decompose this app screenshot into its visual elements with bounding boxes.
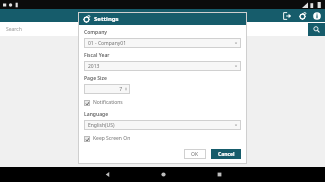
staticText: Page Size xyxy=(84,75,107,82)
staticText: 2013 xyxy=(88,63,234,70)
staticText: English(US) xyxy=(88,122,234,129)
button[interactable]: OK xyxy=(184,149,206,159)
staticText: Notifications xyxy=(93,99,123,106)
button[interactable]: Notifications xyxy=(84,98,241,107)
staticText: Search xyxy=(6,26,22,33)
button[interactable]: Cancel xyxy=(211,149,241,159)
button[interactable]: Recents xyxy=(206,167,232,182)
staticText: Keep Screen On xyxy=(93,135,131,142)
button[interactable]: 7 xyxy=(84,84,130,94)
staticText: Fiscal Year xyxy=(84,52,110,59)
staticText: Company xyxy=(84,29,108,36)
button[interactable]: Settings xyxy=(297,11,307,21)
button[interactable]: 2013 xyxy=(84,61,241,71)
staticText: Cancel xyxy=(218,151,235,158)
button[interactable]: Back xyxy=(94,167,120,182)
button[interactable]: Info xyxy=(312,11,322,21)
button[interactable]: 01 - Company01 xyxy=(84,38,241,48)
button[interactable]: Keep Screen On xyxy=(84,134,241,143)
button[interactable]: Settings xyxy=(78,12,247,25)
button[interactable]: English(US) xyxy=(84,120,241,130)
staticText: OK xyxy=(191,151,199,158)
button[interactable]: Home xyxy=(150,167,176,182)
staticText: 7 xyxy=(84,86,122,93)
staticText: Language xyxy=(84,111,109,118)
staticText: Settings xyxy=(94,15,119,23)
button[interactable]: Search xyxy=(308,23,325,36)
staticText: 01 - Company01 xyxy=(88,40,234,47)
button[interactable]: Logout xyxy=(282,11,292,21)
button[interactable]: Search xyxy=(0,22,308,36)
staticText: Home xyxy=(0,12,325,20)
